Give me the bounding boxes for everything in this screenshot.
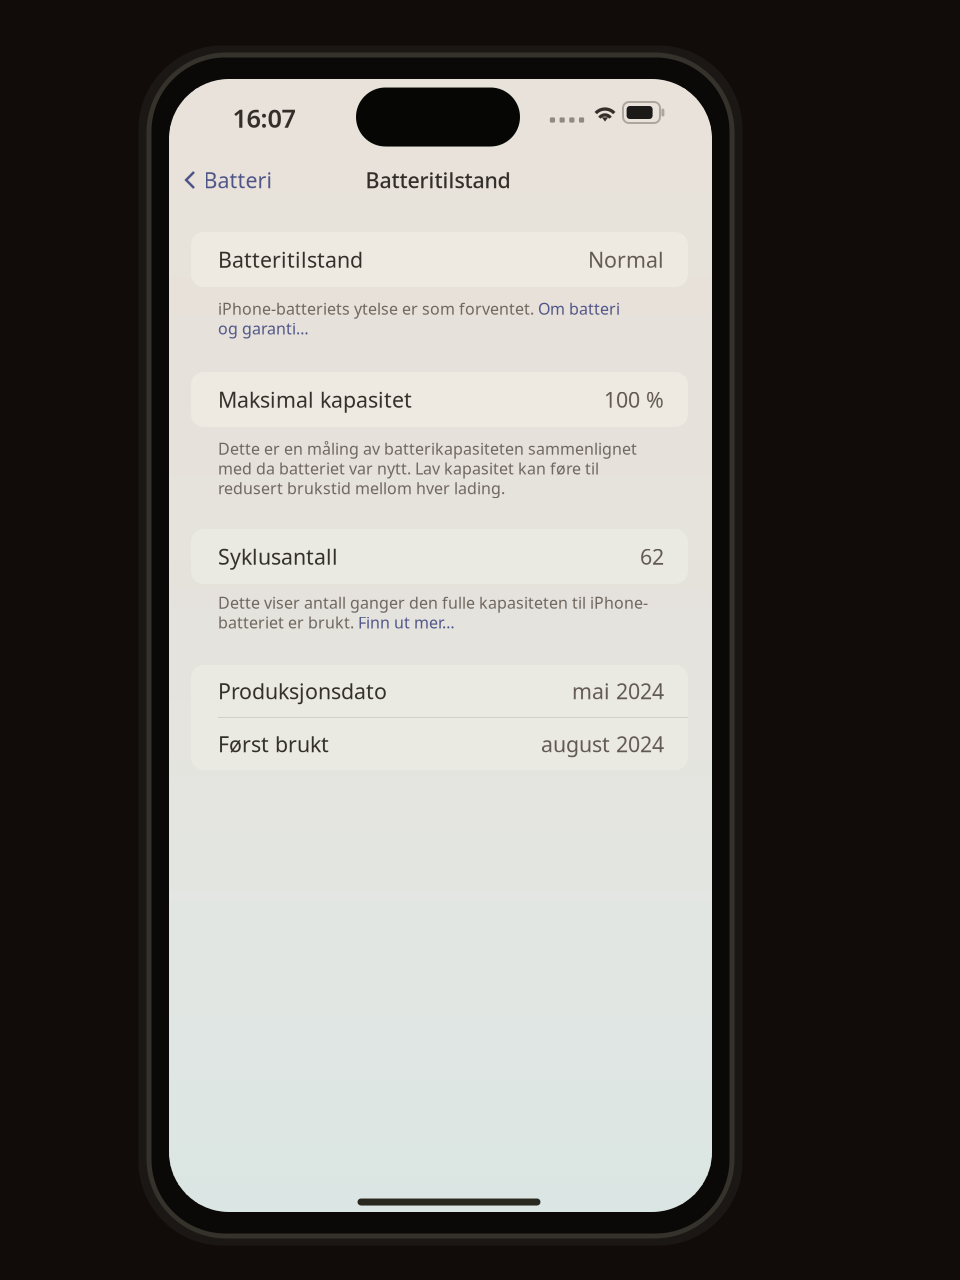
button[interactable]: Syklusantall <box>191 529 688 584</box>
staticText: 62 <box>640 542 664 571</box>
staticText: batteriet er brukt. <box>218 612 358 633</box>
staticText: Først brukt <box>218 730 329 758</box>
button[interactable]: Først brukt <box>191 718 688 770</box>
staticText: Syklusantall <box>218 542 338 571</box>
staticText: 16:07 <box>232 101 295 135</box>
button[interactable]: Finn ut mer… <box>358 612 455 633</box>
button[interactable]: Maksimal kapasitet <box>191 372 688 427</box>
staticText: august 2024 <box>541 730 664 758</box>
button[interactable]: Produksjonsdato <box>191 665 688 717</box>
staticText: Dette er en måling av batterikapasiteten… <box>218 438 637 459</box>
staticText: og garanti… <box>218 318 309 339</box>
staticText: redusert brukstid mellom hver lading. <box>218 477 505 499</box>
staticText: Batteritilstand <box>365 166 510 194</box>
staticText: Produksjonsdato <box>218 677 387 705</box>
button[interactable]: og garanti… <box>218 318 309 339</box>
button[interactable]: Om batteri <box>538 298 620 319</box>
staticText: Finn ut mer… <box>358 612 455 633</box>
staticText: Dette viser antall ganger den fulle kapa… <box>218 592 648 613</box>
staticText: mai 2024 <box>572 677 664 705</box>
button[interactable]: Batteri <box>175 158 284 202</box>
staticText: 100 % <box>604 385 664 414</box>
staticText: Om batteri <box>538 298 620 319</box>
staticText: iPhone-batteriets ytelse er som forvente… <box>218 298 538 319</box>
staticText: Normal <box>588 245 664 274</box>
button[interactable]: Batteritilstand <box>191 232 688 287</box>
staticText: Batteri <box>203 166 272 194</box>
staticText: med da batteriet var nytt. Lav kapasitet… <box>218 458 599 479</box>
staticText: Maksimal kapasitet <box>218 385 412 414</box>
staticText: Batteritilstand <box>218 245 363 274</box>
